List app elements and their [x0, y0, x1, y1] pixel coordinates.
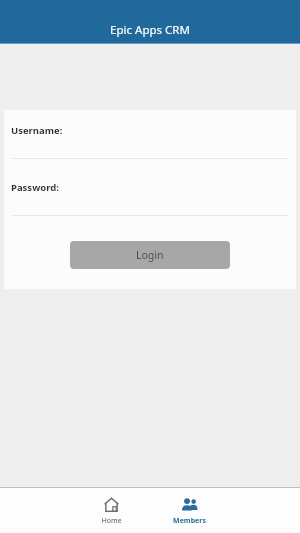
staticText: Username:	[11, 124, 63, 137]
staticText: Login	[136, 248, 164, 262]
staticText: Home	[101, 516, 122, 526]
staticText: Members	[173, 516, 206, 526]
button[interactable]: Members	[161, 488, 217, 533]
button[interactable]: Home	[83, 488, 139, 533]
button[interactable]: Login	[70, 241, 230, 269]
staticText: Password:	[11, 181, 59, 194]
staticText: Epic Apps CRM	[0, 22, 300, 38]
